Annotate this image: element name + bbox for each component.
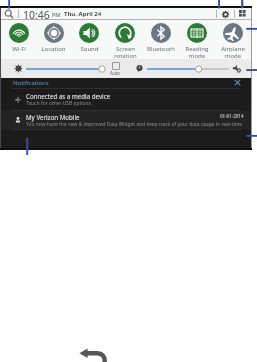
button[interactable]: Location (36, 20, 71, 59)
button[interactable]: Airplane mode (215, 20, 251, 59)
button[interactable]: Back (76, 343, 110, 362)
button[interactable]: Settings (221, 10, 230, 19)
staticText: Location (41, 45, 66, 53)
button[interactable]: Sound settings (232, 63, 243, 74)
staticText: Auto (110, 70, 121, 76)
button[interactable]: Sound (71, 20, 107, 59)
staticText: Connected as a media device (26, 92, 111, 100)
staticText: My Verizon Mobile (26, 113, 80, 121)
staticText: 01-01-2014 (220, 113, 244, 119)
button[interactable]: Clear all notifications (233, 78, 242, 87)
button[interactable]: My Verizon Mobile (1, 111, 251, 129)
staticText: Thu, April 24 (64, 10, 102, 18)
button[interactable]: Wi-Fi (1, 20, 36, 59)
button[interactable]: Bluetooth (143, 20, 179, 59)
staticText: 10:46 (23, 8, 50, 20)
staticText: You now have the new & improved Data Wid… (26, 121, 243, 128)
staticText: Touch for other USB options (26, 100, 91, 107)
staticText: Reading mode (185, 45, 209, 59)
button[interactable]: Search (4, 9, 14, 19)
staticText: Sound (80, 45, 99, 53)
button[interactable]: Toggles (239, 10, 247, 18)
button[interactable]: Connected as a media device (1, 89, 251, 110)
button[interactable]: Reading mode (179, 20, 215, 59)
button[interactable]: Screen rotation (107, 20, 143, 59)
staticText: Screen rotation (114, 45, 137, 59)
staticText: Bluetooth (147, 45, 175, 53)
staticText: PM (52, 11, 61, 18)
staticText: Wi-Fi (12, 45, 26, 53)
staticText: Airplane mode (221, 45, 245, 59)
staticText: Notifications (13, 79, 49, 87)
